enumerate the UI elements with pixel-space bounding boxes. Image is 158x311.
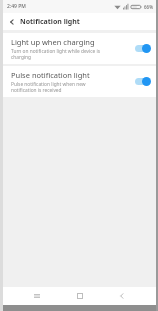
staticText: Pulse notification light when new notifi… [11, 81, 86, 93]
staticText: Notification light [20, 17, 80, 27]
button[interactable]: Home [72, 288, 88, 304]
button[interactable]: Toggle [134, 43, 151, 54]
button[interactable]: Light up when charging [3, 33, 156, 64]
staticText: 66% [144, 4, 153, 10]
button[interactable]: Pulse notification light [3, 66, 156, 97]
button[interactable]: Recent apps [29, 288, 45, 304]
staticText: Turn on notification light while device … [11, 48, 101, 60]
staticText: Pulse notification light [11, 70, 90, 80]
staticText: 2:49 PM [7, 3, 26, 10]
button[interactable]: Back [114, 288, 130, 304]
button[interactable]: Toggle [134, 76, 151, 87]
button[interactable]: Back [3, 13, 20, 30]
staticText: Light up when charging [11, 37, 95, 47]
